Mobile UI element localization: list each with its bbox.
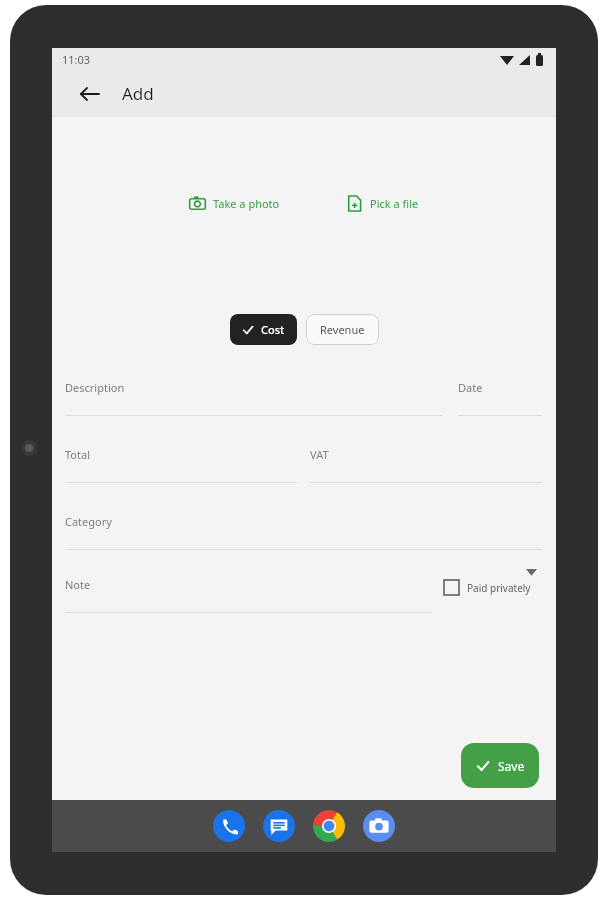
staticText: Paid privately — [467, 581, 531, 595]
button[interactable]: Paid privately — [438, 574, 537, 601]
staticText: Revenue — [320, 322, 365, 337]
button[interactable]: VAT — [310, 445, 542, 483]
staticText: Date — [458, 380, 483, 395]
button[interactable]: Phone — [213, 810, 245, 842]
staticText: Cost — [261, 322, 285, 337]
button[interactable]: Cost — [230, 314, 297, 345]
staticText: VAT — [310, 447, 329, 462]
staticText: Description — [65, 380, 125, 395]
button[interactable]: Total — [65, 445, 297, 483]
button[interactable]: Date — [458, 378, 542, 416]
staticText: Add — [122, 82, 154, 105]
button[interactable]: Chrome — [313, 810, 345, 842]
button[interactable]: Description — [65, 378, 442, 416]
button[interactable]: Back — [70, 74, 110, 114]
staticText: Category — [65, 514, 112, 529]
staticText: Pick a file — [370, 196, 419, 211]
staticText: Save — [498, 758, 525, 774]
button[interactable]: Save — [461, 743, 539, 788]
staticText: Note — [65, 577, 91, 592]
button[interactable]: Take a photo — [183, 189, 286, 218]
staticText: Total — [65, 447, 90, 462]
staticText: 11:03 — [62, 52, 91, 67]
button[interactable]: Note — [65, 575, 432, 613]
button[interactable]: Revenue — [306, 314, 379, 345]
staticText: Take a photo — [213, 196, 280, 211]
button[interactable]: Messages — [263, 810, 295, 842]
button[interactable]: Camera — [363, 810, 395, 842]
button[interactable] — [65, 512, 542, 548]
button[interactable]: Pick a file — [340, 189, 425, 218]
button[interactable]: Category — [65, 512, 542, 550]
